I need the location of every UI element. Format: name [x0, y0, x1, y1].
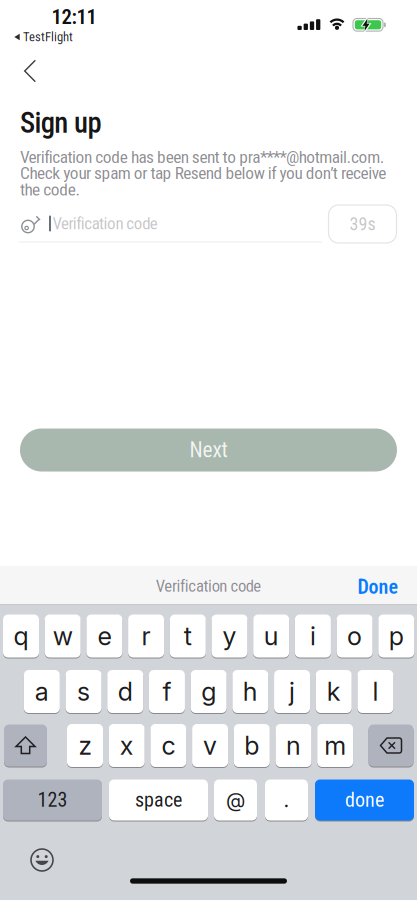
staticText: c — [161, 730, 175, 761]
staticText: u — [264, 621, 279, 651]
button[interactable]: 39s — [328, 205, 396, 243]
button[interactable]: p — [378, 614, 414, 658]
button[interactable]: s — [66, 669, 102, 713]
button[interactable]: y — [211, 614, 247, 658]
button[interactable]: h — [232, 669, 268, 713]
staticText: space — [135, 788, 182, 812]
button[interactable]: u — [253, 614, 289, 658]
staticText: k — [327, 676, 341, 707]
button[interactable]: k — [316, 669, 352, 713]
staticText: n — [286, 730, 301, 761]
staticText: . — [283, 788, 289, 812]
staticText: t — [184, 621, 192, 651]
staticText: 12:11 — [51, 5, 96, 29]
button[interactable]: q — [3, 614, 39, 658]
button[interactable]: e — [86, 614, 122, 658]
button[interactable]: l — [357, 669, 393, 713]
staticText: z — [78, 730, 91, 761]
staticText: a — [35, 676, 49, 707]
button[interactable]: Delete — [368, 724, 413, 767]
button[interactable]: b — [234, 723, 270, 767]
button[interactable]: done — [315, 779, 414, 821]
button[interactable]: c — [150, 723, 186, 767]
staticText: Check your spam or tap Resend below if y… — [20, 163, 386, 183]
button[interactable]: Emoji — [20, 838, 64, 882]
staticText: b — [244, 730, 259, 761]
staticText: Verification code — [52, 214, 158, 233]
staticText: h — [243, 676, 258, 707]
staticText: w — [53, 621, 73, 651]
staticText: @ — [226, 788, 245, 812]
staticText: e — [97, 621, 111, 651]
button[interactable]: d — [107, 669, 143, 713]
button[interactable]: m — [317, 723, 353, 767]
staticText: y — [222, 621, 236, 651]
staticText: Sign up — [20, 106, 101, 140]
staticText: done — [345, 788, 384, 812]
button[interactable]: o — [337, 614, 373, 658]
button[interactable]: i — [295, 614, 331, 658]
staticText: v — [203, 730, 217, 761]
staticText: j — [289, 676, 295, 707]
button[interactable]: space — [109, 779, 208, 821]
staticText: o — [347, 621, 362, 651]
button[interactable]: . — [265, 779, 308, 821]
staticText: 123 — [37, 788, 67, 812]
staticText: q — [13, 621, 28, 651]
staticText: d — [118, 676, 133, 707]
button[interactable]: r — [128, 614, 164, 658]
button[interactable]: j — [274, 669, 310, 713]
staticText: f — [162, 676, 171, 707]
staticText: i — [310, 621, 316, 651]
button[interactable]: t — [170, 614, 206, 658]
staticText: s — [77, 676, 90, 707]
button[interactable]: g — [191, 669, 227, 713]
button[interactable]: @ — [214, 779, 257, 821]
button[interactable]: Next — [20, 428, 397, 471]
button[interactable]: Shift — [4, 724, 47, 767]
button[interactable]: z — [67, 723, 103, 767]
staticText: r — [142, 621, 151, 651]
staticText: x — [120, 730, 134, 761]
staticText: Verification code — [156, 576, 261, 596]
staticText: TestFlight — [23, 30, 73, 44]
staticText: p — [389, 621, 404, 651]
staticText: the code. — [20, 179, 80, 200]
button[interactable]: w — [45, 614, 81, 658]
staticText: Done — [357, 575, 398, 599]
staticText: m — [324, 730, 346, 761]
staticText: Next — [189, 437, 227, 462]
button[interactable]: Done — [348, 567, 408, 606]
button[interactable]: a — [24, 669, 60, 713]
button[interactable]: v — [192, 723, 228, 767]
staticText: l — [372, 676, 378, 707]
staticText: Verification code has been sent to pra**… — [20, 147, 385, 167]
button[interactable]: 123 — [3, 779, 102, 821]
button[interactable]: n — [275, 723, 311, 767]
staticText: g — [201, 676, 216, 707]
button[interactable]: x — [109, 723, 145, 767]
button[interactable]: Back — [8, 49, 52, 93]
button[interactable]: f — [149, 669, 185, 713]
staticText: 39s — [349, 213, 375, 235]
